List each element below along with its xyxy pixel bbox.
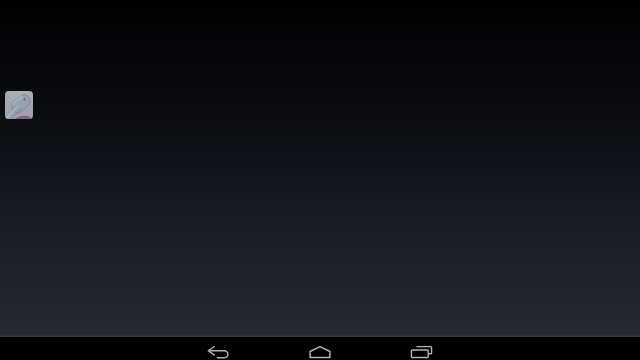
button[interactable]: Recent apps — [391, 337, 451, 360]
button[interactable]: Back — [189, 337, 249, 360]
button[interactable]: Key password app — [5, 91, 33, 119]
button[interactable]: Home — [290, 337, 350, 360]
